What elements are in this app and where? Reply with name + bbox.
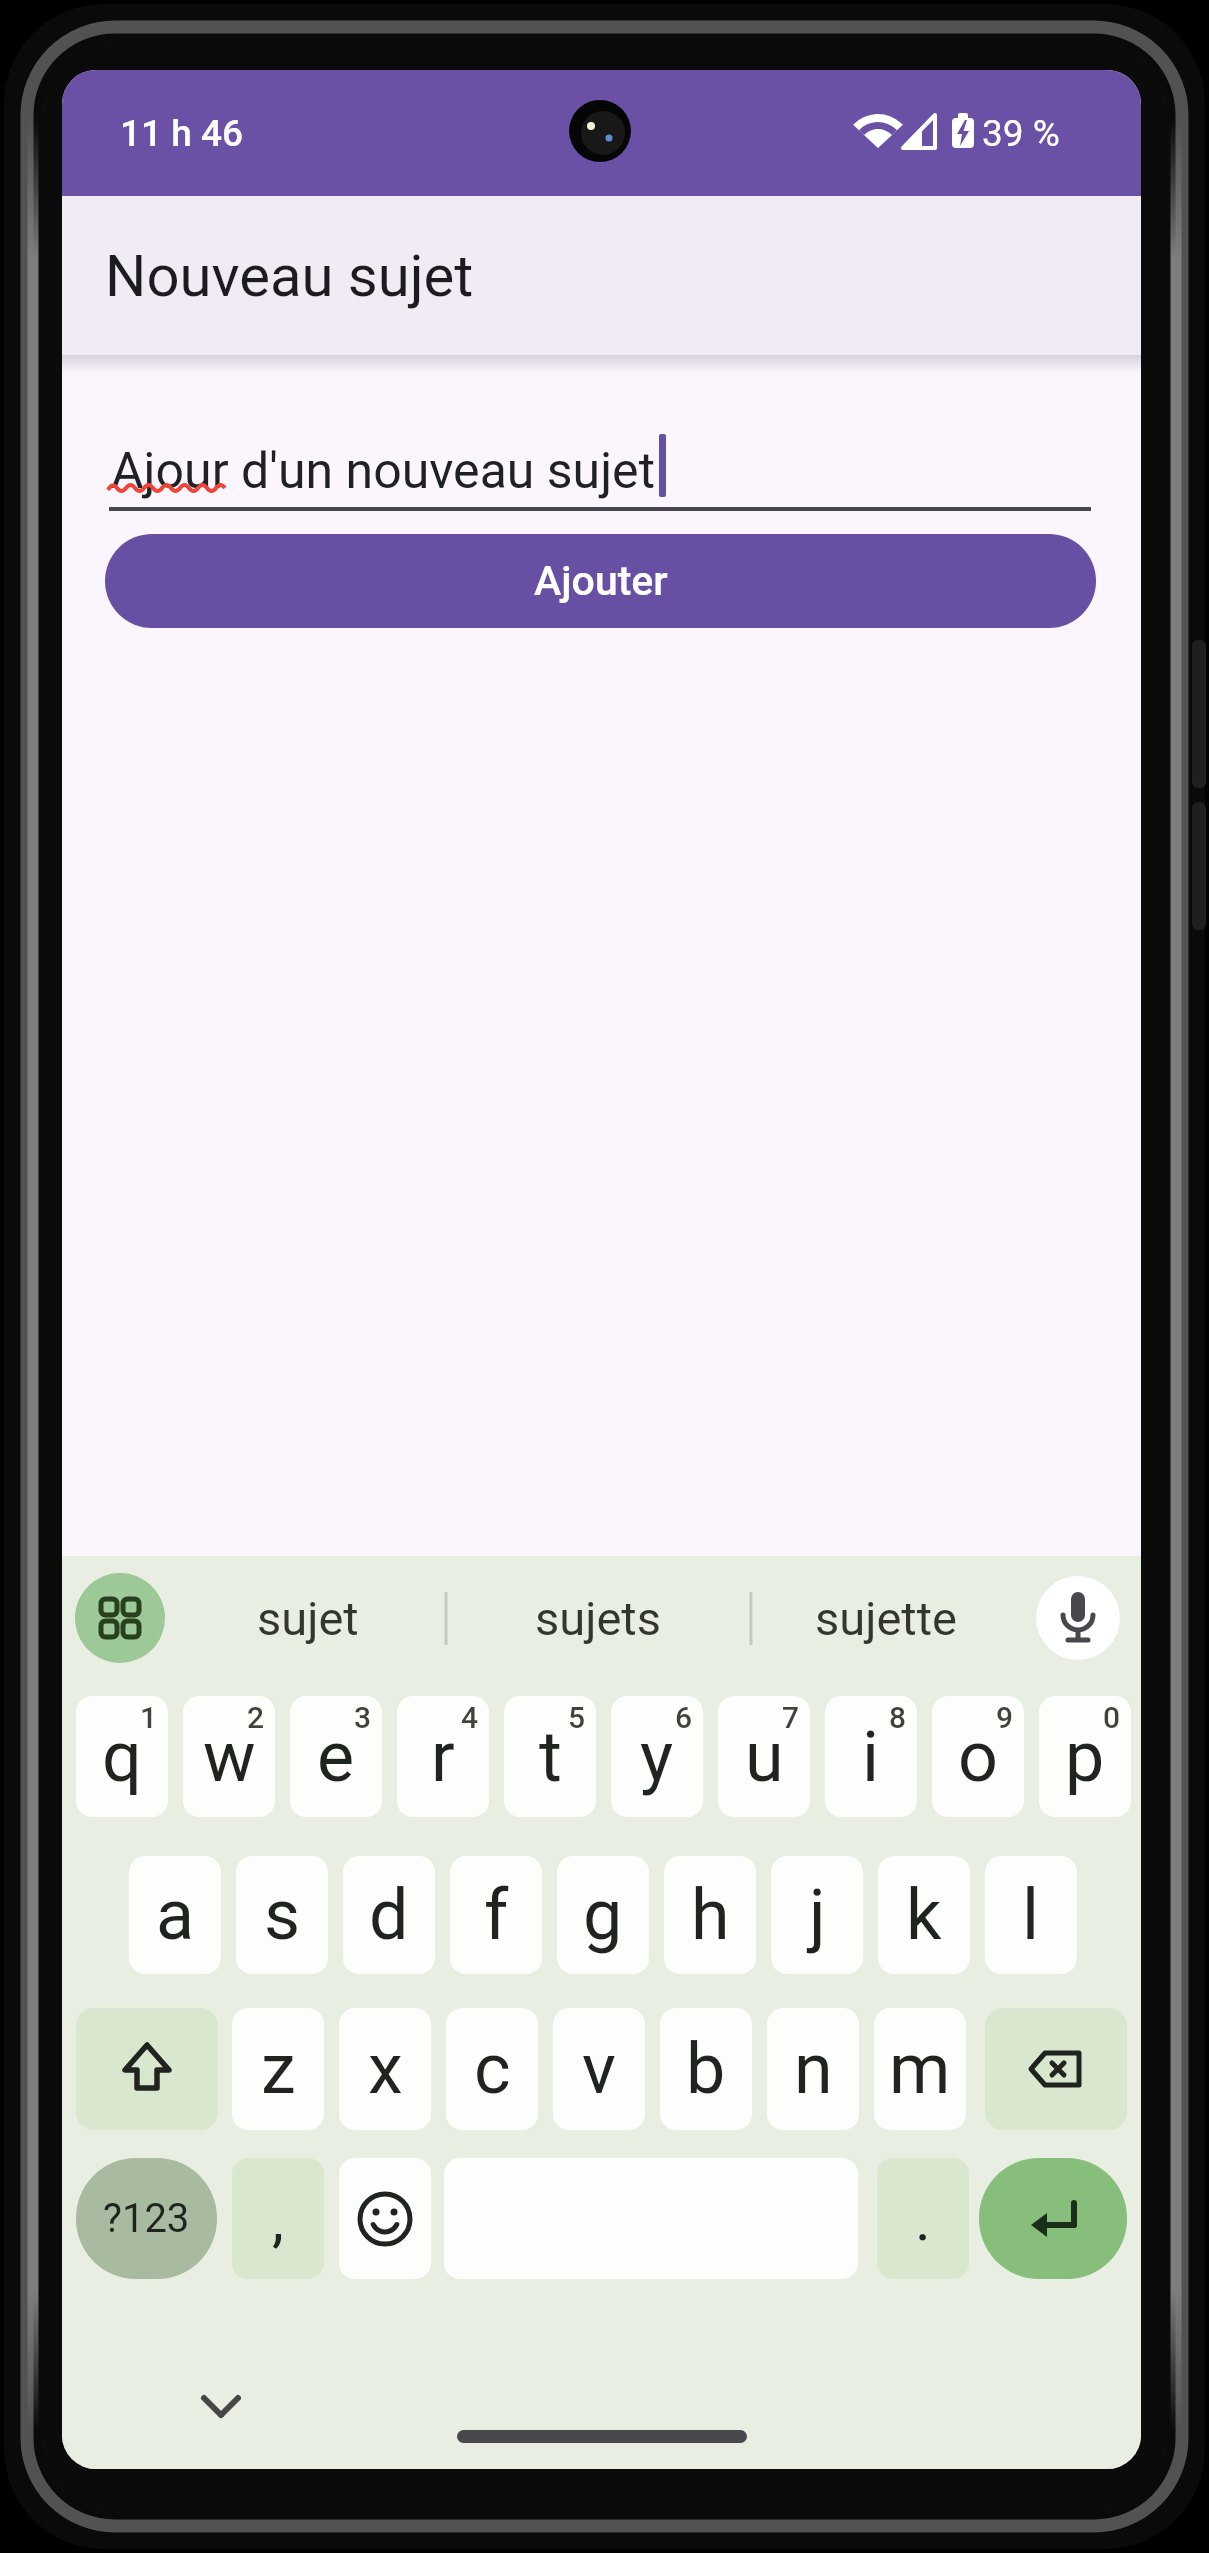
staticText: , <box>272 2184 284 2254</box>
staticText: r <box>431 1716 455 1798</box>
staticText: ?123 <box>103 2195 190 2242</box>
button[interactable]: z <box>232 2008 324 2130</box>
staticText: 2 <box>247 1700 265 1735</box>
staticText: Nouveau sujet <box>105 242 474 310</box>
staticText: b <box>686 2028 726 2110</box>
button[interactable]: a <box>129 1856 221 1974</box>
button[interactable]: sujette <box>806 1588 966 1648</box>
button[interactable]: Ajouter <box>105 534 1096 628</box>
button[interactable] <box>1036 1576 1120 1660</box>
staticText: p <box>1065 1716 1105 1798</box>
staticText: y <box>640 1716 674 1798</box>
staticText: . <box>915 2184 931 2254</box>
staticText: j <box>809 1874 826 1956</box>
button[interactable]: . <box>877 2158 969 2279</box>
button[interactable]: x <box>339 2008 431 2130</box>
button[interactable]: q <box>76 1696 168 1817</box>
staticText: w <box>203 1716 256 1798</box>
staticText: 1 <box>140 1700 158 1735</box>
staticText: e <box>317 1716 355 1798</box>
staticText: l <box>1022 1874 1040 1956</box>
staticText: 39 % <box>982 112 1060 154</box>
staticText: h <box>691 1874 730 1956</box>
staticText: 11 h 46 <box>120 112 244 154</box>
button[interactable]: g <box>557 1856 649 1974</box>
staticText: z <box>261 2028 296 2110</box>
staticText: 4 <box>461 1700 479 1735</box>
button[interactable]: y <box>611 1696 703 1817</box>
button[interactable]: sujet <box>228 1588 388 1648</box>
staticText: t <box>539 1716 562 1798</box>
staticText: sujet <box>257 1591 359 1646</box>
button[interactable]: e <box>290 1696 382 1817</box>
staticText: v <box>582 2028 616 2110</box>
button[interactable]: f <box>450 1856 542 1974</box>
staticText: a <box>156 1874 195 1956</box>
staticText: k <box>906 1874 942 1956</box>
button[interactable]: sujets <box>518 1588 678 1648</box>
staticText: d <box>369 1874 409 1956</box>
button[interactable]: i <box>825 1696 917 1817</box>
staticText: o <box>958 1716 998 1798</box>
staticText: m <box>889 2028 951 2110</box>
button[interactable]: j <box>771 1856 863 1974</box>
staticText: x <box>368 2028 403 2110</box>
staticText: c <box>474 2028 511 2110</box>
staticText: 6 <box>675 1700 693 1735</box>
staticText: sujets <box>535 1591 661 1646</box>
staticText: f <box>484 1874 509 1956</box>
button[interactable]: s <box>236 1856 328 1974</box>
button[interactable]: k <box>878 1856 970 1974</box>
button[interactable] <box>979 2158 1127 2279</box>
button[interactable]: t <box>504 1696 596 1817</box>
button[interactable] <box>76 2008 218 2130</box>
button[interactable]: v <box>553 2008 645 2130</box>
button[interactable] <box>76 2158 217 2279</box>
staticText: 5 <box>568 1700 586 1735</box>
button[interactable]: c <box>446 2008 538 2130</box>
button[interactable]: , <box>232 2158 324 2279</box>
button[interactable]: n <box>767 2008 859 2130</box>
staticText: u <box>745 1716 784 1798</box>
staticText: 7 <box>782 1700 800 1735</box>
button[interactable]: w <box>183 1696 275 1817</box>
button[interactable]: u <box>718 1696 810 1817</box>
button[interactable]: h <box>664 1856 756 1974</box>
button[interactable] <box>105 420 1096 515</box>
button[interactable] <box>75 1573 165 1663</box>
button[interactable]: m <box>874 2008 966 2130</box>
button[interactable]: o <box>932 1696 1024 1817</box>
staticText: n <box>794 2028 833 2110</box>
button[interactable]: d <box>343 1856 435 1974</box>
button[interactable] <box>339 2158 431 2279</box>
staticText: q <box>102 1716 142 1798</box>
button[interactable]: l <box>985 1856 1077 1974</box>
button[interactable]: r <box>397 1696 489 1817</box>
staticText: 3 <box>354 1700 372 1735</box>
staticText: g <box>583 1874 623 1956</box>
button[interactable]: p <box>1039 1696 1131 1817</box>
staticText: s <box>264 1874 301 1956</box>
staticText: Ajouter <box>534 557 668 605</box>
staticText: i <box>862 1716 880 1798</box>
button[interactable]: b <box>660 2008 752 2130</box>
staticText: 0 <box>1103 1700 1121 1735</box>
staticText: Ajour d'un nouveau sujet <box>111 442 655 501</box>
staticText: 8 <box>889 1700 907 1735</box>
button[interactable] <box>985 2008 1127 2130</box>
staticText: 9 <box>996 1700 1014 1735</box>
staticText: sujette <box>815 1591 958 1646</box>
